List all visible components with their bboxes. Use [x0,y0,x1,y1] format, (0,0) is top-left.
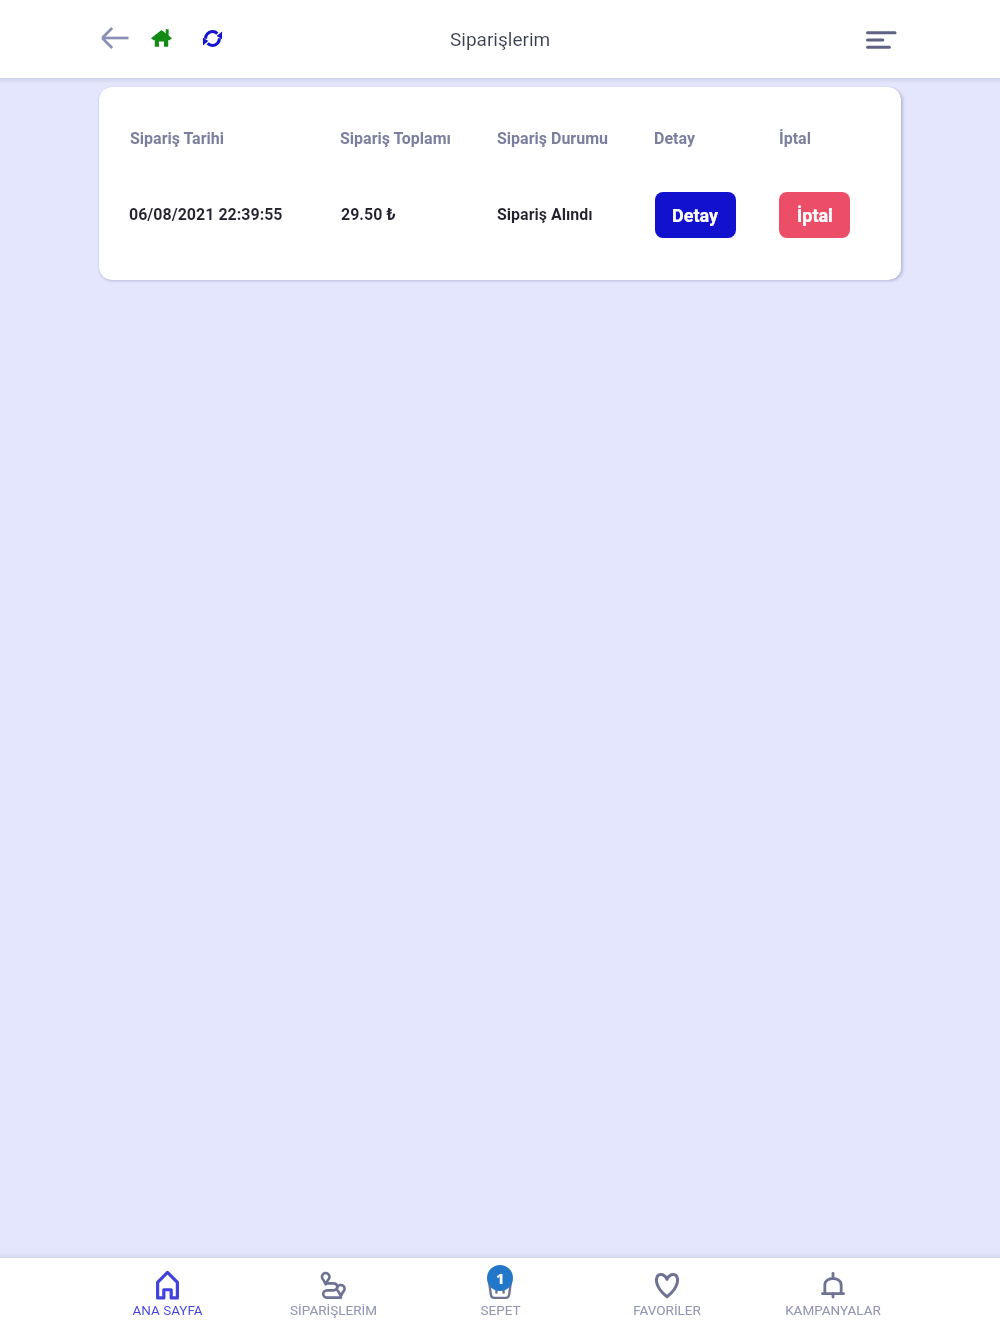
button[interactable]: Home [136,13,186,63]
staticText: Sipariş Durumu [497,129,608,148]
button[interactable]: Back [90,13,140,63]
button[interactable]: SİPARİŞLERİM [250,1258,416,1334]
button[interactable]: FAVORİLER [584,1258,750,1334]
button[interactable]: Menu [851,10,911,70]
staticText: 29.50 ₺ [341,205,396,224]
button[interactable]: Refresh [187,13,237,63]
button[interactable]: 1 [417,1258,583,1334]
staticText: Sipariş Tarihi [130,129,224,148]
button[interactable]: Detay [655,192,736,238]
staticText: Detay [672,205,719,226]
staticText: KAMPANYALAR [785,1302,881,1318]
button[interactable]: ANA SAYFA [84,1258,250,1334]
staticText: FAVORİLER [633,1302,701,1318]
staticText: 1 [496,1268,505,1288]
staticText: İptal [797,205,833,226]
staticText: Sipariş Alındı [497,205,593,224]
staticText: İptal [779,129,811,148]
button[interactable]: KAMPANYALAR [750,1258,916,1334]
button[interactable]: İptal [779,192,850,238]
staticText: Sipariş Toplamı [340,129,451,148]
staticText: SEPET [480,1302,521,1318]
staticText: SİPARİŞLERİM [290,1302,377,1318]
staticText: 06/08/2021 22:39:55 [129,205,283,224]
staticText: Detay [654,129,695,148]
staticText: ANA SAYFA [132,1302,203,1318]
staticText: Siparişlerim [450,28,551,50]
